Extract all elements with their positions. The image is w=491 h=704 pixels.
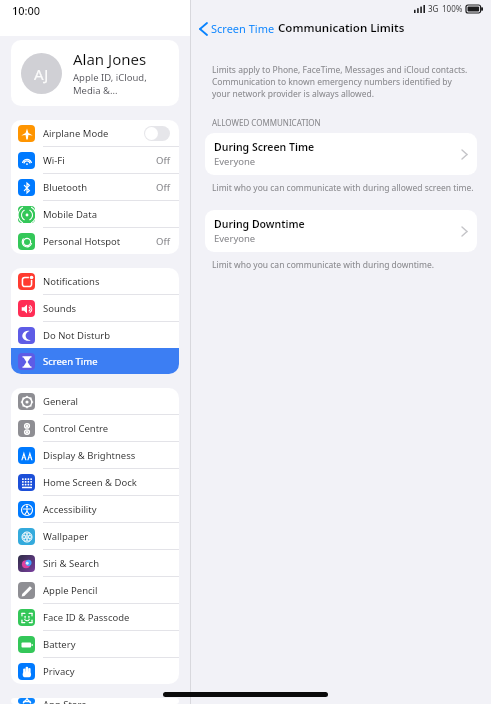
staticText: Alan Jones [73,49,147,69]
button[interactable]: Airplane Mode [11,120,179,146]
staticText: Privacy [43,665,170,678]
staticText: During Screen Time [214,140,315,154]
staticText: Notifications [43,275,170,288]
button[interactable]: Airplane Mode toggle [144,126,170,141]
staticText: Wi-Fi [43,154,156,167]
staticText: Off [156,181,170,194]
staticText: Limits apply to Phone, FaceTime, Message… [212,64,470,100]
staticText: Off [156,154,170,167]
staticText: Off [156,235,170,248]
button[interactable]: Home Screen & Dock [11,469,179,495]
staticText: Everyone [214,232,256,245]
button[interactable]: Bluetooth [11,174,179,200]
button[interactable]: Face ID & Passcode [11,604,179,630]
staticText: Siri & Search [43,557,170,570]
staticText: Face ID & Passcode [43,611,170,624]
staticText: Home Screen & Dock [43,476,170,489]
staticText: 100% [442,3,463,14]
staticText: Everyone [214,155,256,168]
button[interactable]: Wallpaper [11,523,179,549]
button[interactable]: Accessibility [11,496,179,522]
button[interactable]: Mobile Data [11,201,179,227]
staticText: During Downtime [214,217,305,231]
button[interactable]: App Store [11,698,179,704]
staticText: Sounds [43,302,170,315]
staticText: 3G [428,3,439,14]
staticText: Battery [43,638,170,651]
staticText: Do Not Disturb [43,329,170,342]
button[interactable]: Screen Time [198,21,277,36]
button[interactable]: Battery [11,631,179,657]
staticText: Screen Time [43,355,170,368]
staticText: Screen Time [211,21,275,36]
button[interactable]: Apple Pencil [11,577,179,603]
button[interactable]: General [11,388,179,414]
staticText: Bluetooth [43,181,156,194]
staticText: Limit who you can communicate with durin… [212,182,474,194]
button[interactable]: Sounds [11,295,179,321]
staticText: Communication Limits [278,20,405,36]
staticText: ALLOWED COMMUNICATION [212,117,321,128]
staticText: 10:00 [12,3,41,18]
staticText: General [43,395,170,408]
button[interactable]: Screen Time [11,348,179,374]
button[interactable]: Display & Brightness [11,442,179,468]
staticText: Display & Brightness [43,449,170,462]
staticText: Personal Hotspot [43,235,156,248]
button[interactable]: Personal Hotspot [11,228,179,254]
button[interactable]: AJ [11,40,179,106]
staticText: Control Centre [43,422,170,435]
button[interactable]: Notifications [11,268,179,294]
staticText: Accessibility [43,503,170,516]
staticText: Wallpaper [43,530,170,543]
staticText: AJ [34,64,49,84]
staticText: Limit who you can communicate with durin… [212,259,435,271]
staticText: Apple Pencil [43,584,170,597]
button[interactable]: During Screen Time [205,133,477,175]
button[interactable]: Siri & Search [11,550,179,576]
staticText: Mobile Data [43,208,170,221]
button[interactable]: Do Not Disturb [11,322,179,348]
staticText: App Store [43,698,170,704]
staticText: Airplane Mode [43,127,144,140]
button[interactable]: Control Centre [11,415,179,441]
button[interactable]: Privacy [11,658,179,684]
staticText: Apple ID, iCloud, Media &… [73,71,169,97]
button[interactable]: Wi-Fi [11,147,179,173]
button[interactable]: During Downtime [205,210,477,252]
